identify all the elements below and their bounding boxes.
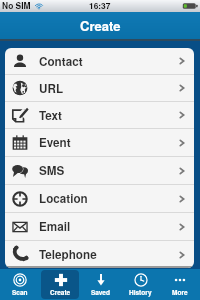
button[interactable]: Saved <box>81 270 119 299</box>
staticText: Contact <box>39 53 83 70</box>
staticText: SMS <box>39 162 65 179</box>
staticText: Event <box>39 134 71 151</box>
button[interactable]: Text <box>5 102 194 128</box>
button[interactable]: Event <box>5 129 194 156</box>
staticText: Text <box>39 107 62 124</box>
button[interactable]: Email <box>5 213 194 240</box>
staticText: Create <box>80 16 121 35</box>
button[interactable]: Scan <box>1 270 39 299</box>
staticText: Scan <box>12 288 28 297</box>
staticText: Saved <box>91 288 110 297</box>
staticText: URL <box>39 80 64 97</box>
staticText: More <box>172 288 188 297</box>
button[interactable]: More <box>161 270 199 299</box>
staticText: History <box>129 288 152 297</box>
button[interactable]: SMS <box>5 157 194 184</box>
staticText: 16:37 <box>89 0 111 12</box>
button[interactable]: History <box>121 270 159 299</box>
staticText: Create <box>50 288 71 297</box>
button[interactable]: URL <box>5 75 194 101</box>
button[interactable]: Location <box>5 185 194 212</box>
staticText: Email <box>39 218 71 235</box>
staticText: Telephone <box>39 246 97 263</box>
staticText: No SIM <box>2 0 31 12</box>
button[interactable]: Create <box>41 270 79 299</box>
staticText: Location <box>39 190 88 207</box>
button[interactable]: Telephone <box>5 241 194 268</box>
button[interactable]: Contact <box>5 48 194 74</box>
